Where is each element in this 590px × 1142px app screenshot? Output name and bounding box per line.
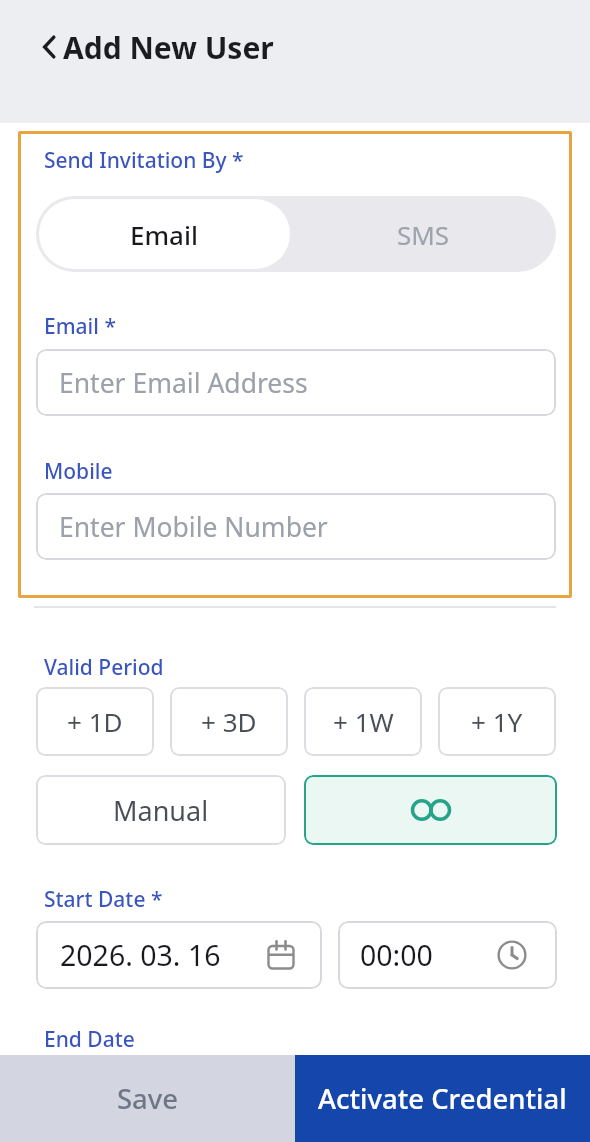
staticText: Email * bbox=[44, 312, 116, 341]
staticText: + 1D bbox=[67, 704, 123, 739]
staticText: Save bbox=[117, 1080, 179, 1117]
staticText: Manual bbox=[113, 792, 209, 829]
button[interactable]: 2026. 03. 16 bbox=[36, 921, 322, 989]
staticText: Send Invitation By * bbox=[44, 146, 244, 175]
button[interactable]: Email bbox=[39, 199, 290, 269]
staticText: + 1W bbox=[333, 704, 394, 739]
button[interactable]: + 1W bbox=[304, 687, 422, 756]
staticText: Enter Mobile Number bbox=[59, 509, 328, 545]
button[interactable]: + 1D bbox=[36, 687, 154, 756]
button[interactable]: 00:00 bbox=[338, 921, 557, 989]
button[interactable]: Enter Email Address bbox=[36, 349, 556, 416]
staticText: Enter Email Address bbox=[59, 365, 308, 401]
staticText: Email bbox=[130, 217, 199, 252]
staticText: SMS bbox=[397, 217, 450, 252]
button[interactable] bbox=[304, 775, 557, 845]
button[interactable]: + 3D bbox=[170, 687, 288, 756]
staticText: Activate Credential bbox=[318, 1080, 567, 1117]
staticText: + 1Y bbox=[471, 704, 523, 739]
staticText: Valid Period bbox=[44, 653, 164, 682]
button[interactable]: Add New User bbox=[38, 26, 274, 68]
button[interactable]: Manual bbox=[36, 775, 286, 845]
staticText: + 3D bbox=[201, 704, 257, 739]
button[interactable]: Activate Credential bbox=[295, 1055, 590, 1142]
staticText: Add New User bbox=[63, 27, 274, 68]
staticText: 00:00 bbox=[360, 936, 433, 975]
staticText: Mobile bbox=[44, 457, 113, 486]
staticText: 2026. 03. 16 bbox=[60, 936, 221, 975]
button[interactable]: SMS bbox=[290, 196, 556, 272]
button[interactable]: + 1Y bbox=[438, 687, 556, 756]
button[interactable]: Enter Mobile Number bbox=[36, 493, 556, 560]
staticText: Start Date * bbox=[44, 885, 163, 914]
staticText: End Date bbox=[44, 1025, 135, 1054]
button[interactable]: Save bbox=[0, 1055, 295, 1142]
